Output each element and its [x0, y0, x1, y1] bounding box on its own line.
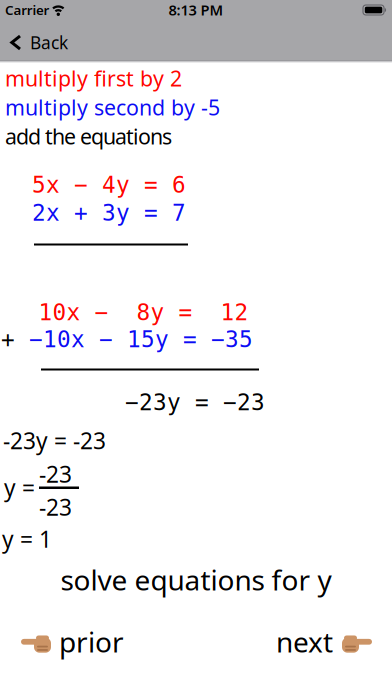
button[interactable]: prior: [21, 623, 124, 660]
staticText: −23y = −23: [125, 389, 265, 415]
staticText: 5x − 4y = 6: [32, 172, 186, 198]
staticText: multiply first by 2: [5, 64, 182, 92]
staticText: -23y = -23: [3, 425, 106, 455]
staticText: y = 1: [2, 524, 52, 554]
staticText: add the equations: [5, 122, 172, 150]
staticText: multiply second by -5: [5, 93, 220, 121]
staticText: next: [276, 623, 333, 660]
staticText: y =: [4, 472, 35, 502]
staticText: 8:13 PM: [168, 0, 223, 19]
staticText: -23: [39, 492, 72, 522]
staticText: 2x + 3y = 7: [32, 200, 186, 226]
staticText: Carrier: [5, 1, 50, 19]
staticText: solve equations for y: [60, 561, 331, 598]
staticText: +: [1, 326, 29, 352]
staticText: -23: [39, 459, 72, 489]
staticText: −10x − 15y = −35: [29, 326, 253, 352]
staticText: 10x − 8y = 12: [38, 299, 248, 325]
button[interactable]: Back: [10, 31, 68, 54]
button[interactable]: next: [276, 623, 372, 660]
staticText: prior: [59, 623, 124, 660]
staticText: Back: [30, 31, 68, 54]
